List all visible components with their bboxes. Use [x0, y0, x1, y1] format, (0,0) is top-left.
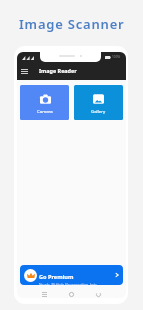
staticText: Image Scanner — [19, 15, 125, 33]
button[interactable]: Back — [92, 288, 105, 298]
staticText: 100% — [112, 55, 121, 59]
staticText: Camera — [37, 108, 53, 114]
button[interactable]: Recents — [38, 288, 51, 298]
button[interactable]: Menu — [18, 65, 30, 77]
staticText: No ads, Multiple file recognition, batc.… — [39, 282, 100, 285]
button[interactable]: Camera — [20, 85, 69, 120]
staticText: Gallery — [91, 108, 106, 114]
button[interactable]: Gallery — [74, 85, 123, 120]
button[interactable]: Open premium — [114, 272, 120, 278]
staticText: Image Reader — [39, 67, 77, 74]
button[interactable]: Go Premium — [20, 265, 123, 285]
button[interactable]: Home — [65, 288, 78, 298]
staticText: Go Premium — [39, 273, 74, 281]
